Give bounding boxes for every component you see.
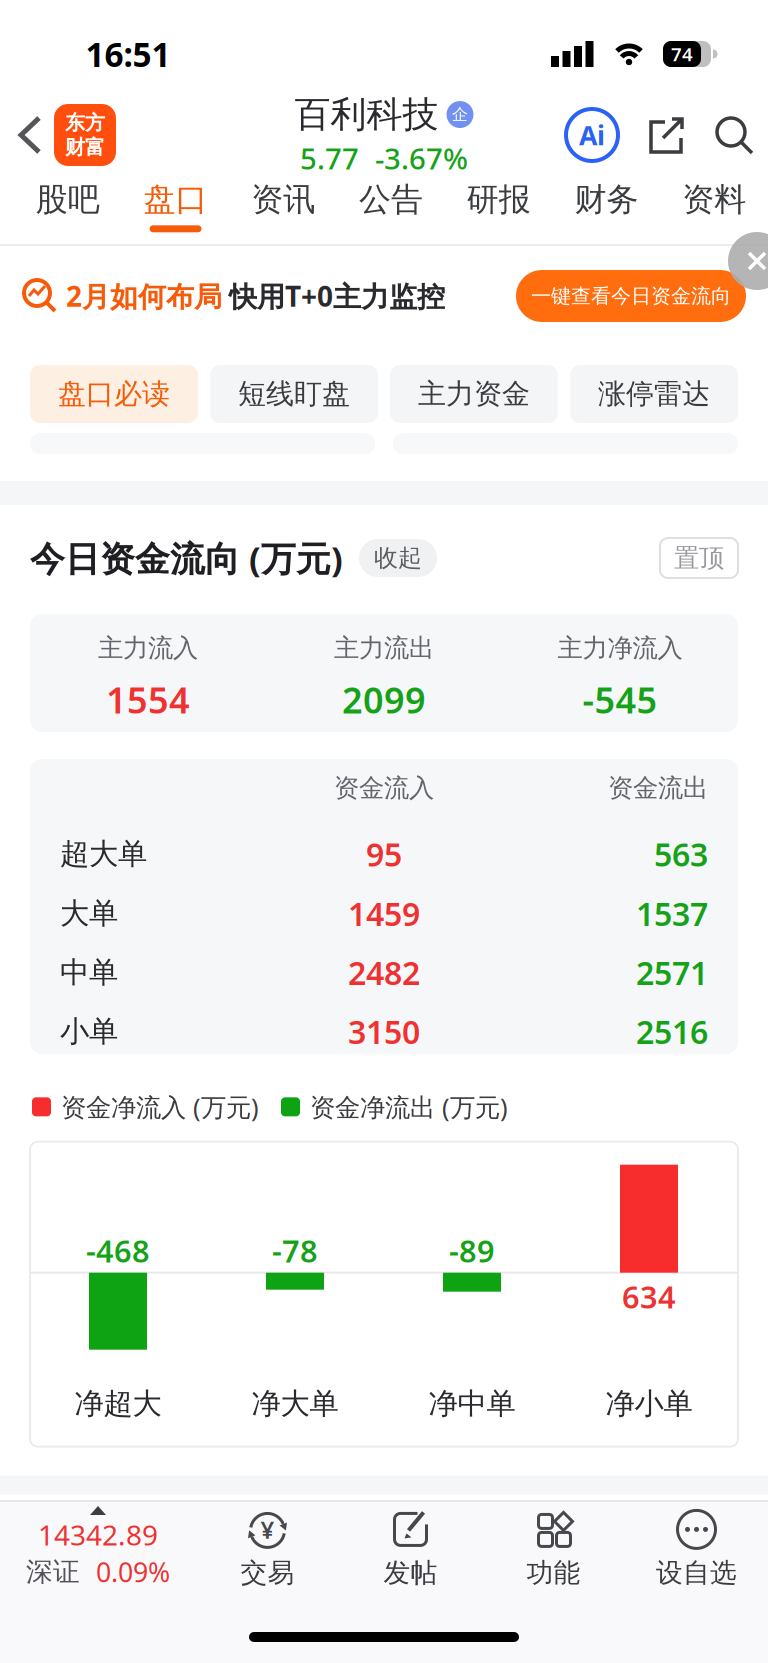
button[interactable]: 短线盯盘: [210, 365, 378, 423]
staticText: 3150: [348, 1010, 420, 1053]
staticText: 主力净流入: [557, 633, 682, 664]
staticText: 主力流入: [98, 633, 198, 664]
button[interactable]: 返回: [17, 114, 43, 156]
staticText: 今日资金流向 (万元): [30, 535, 343, 581]
staticText: 股吧: [36, 180, 100, 219]
staticText: 交易: [240, 1556, 294, 1589]
staticText: 涨停雷达: [598, 377, 710, 411]
staticText: 2月如何布局: [66, 277, 222, 315]
staticText: 快用T+0主力监控: [229, 277, 445, 315]
staticText: 净大单: [251, 1386, 338, 1422]
staticText: 16:51: [85, 32, 170, 76]
button[interactable]: 发帖: [339, 1506, 482, 1589]
staticText: 深证: [26, 1555, 80, 1588]
staticText: 2482: [348, 951, 420, 994]
staticText: 1459: [348, 892, 420, 935]
staticText: 主力流出: [334, 633, 434, 664]
button[interactable]: 股吧: [14, 180, 122, 232]
staticText: 净超大: [74, 1386, 161, 1422]
button[interactable]: Ai 助手: [566, 109, 618, 161]
staticText: 盘口必读: [58, 377, 170, 411]
button[interactable]: 主力资金: [390, 365, 558, 423]
button[interactable]: 14342.89: [0, 1506, 196, 1590]
staticText: 百利科技: [294, 92, 438, 137]
staticText: 发帖: [383, 1556, 437, 1589]
staticText: 95: [366, 833, 402, 875]
staticText: 资讯: [251, 180, 315, 219]
staticText: 主力资金: [418, 377, 530, 411]
staticText: 资金净流入 (万元): [61, 1090, 259, 1124]
staticText: 5.77 -3.67%: [300, 139, 468, 178]
staticText: -78: [272, 1230, 318, 1271]
staticText: -545: [582, 676, 657, 723]
staticText: 大单: [60, 895, 118, 931]
staticText: 1537: [636, 892, 708, 935]
button[interactable]: 东方财富: [54, 104, 116, 166]
staticText: 资金流入: [334, 772, 434, 804]
button[interactable]: 涨停雷达: [570, 365, 738, 423]
button[interactable]: 资料: [660, 180, 768, 232]
staticText: 东方: [65, 110, 105, 135]
button[interactable]: 搜索: [712, 113, 756, 157]
button[interactable]: 功能: [482, 1506, 625, 1589]
staticText: 563: [654, 833, 708, 875]
button[interactable]: 分享: [643, 112, 689, 158]
staticText: 财富: [65, 135, 105, 160]
staticText: 盘口: [144, 180, 208, 219]
staticText: 2516: [636, 1010, 708, 1053]
staticText: 收起: [374, 543, 422, 573]
staticText: 财务: [574, 180, 638, 219]
staticText: 资料: [682, 180, 746, 219]
staticText: 14342.89: [38, 1516, 158, 1553]
staticText: -468: [86, 1230, 150, 1271]
button[interactable]: 资讯: [229, 180, 337, 232]
button[interactable]: 一键查看今日资金流向: [516, 270, 746, 322]
button[interactable]: 财务: [553, 180, 660, 232]
staticText: 2571: [636, 951, 708, 994]
staticText: 净小单: [605, 1386, 692, 1422]
staticText: 74: [671, 42, 693, 66]
button[interactable]: 设自选: [625, 1506, 768, 1589]
button[interactable]: 公告: [337, 180, 445, 232]
staticText: 超大单: [60, 836, 147, 872]
staticText: 小单: [60, 1013, 118, 1049]
staticText: Ai: [579, 117, 605, 153]
staticText: 中单: [60, 954, 118, 990]
button[interactable]: 置顶: [660, 538, 738, 578]
button[interactable]: 盘口必读: [30, 365, 198, 423]
button[interactable]: 关闭: [728, 232, 768, 290]
staticText: 短线盯盘: [238, 377, 350, 411]
staticText: 功能: [526, 1556, 580, 1589]
staticText: 公告: [359, 180, 423, 219]
staticText: 置顶: [674, 542, 724, 574]
button[interactable]: ¥: [196, 1506, 339, 1589]
button[interactable]: 研报: [445, 180, 553, 232]
staticText: 0.09%: [96, 1554, 170, 1590]
button[interactable]: 盘口: [122, 180, 229, 232]
staticText: 1554: [106, 676, 190, 723]
staticText: 2099: [342, 676, 426, 723]
staticText: 设自选: [656, 1556, 737, 1589]
staticText: 资金净流出 (万元): [310, 1090, 508, 1124]
staticText: 一键查看今日资金流向: [531, 284, 731, 308]
staticText: ¥: [260, 1513, 274, 1545]
staticText: 634: [622, 1276, 676, 1317]
staticText: -89: [449, 1230, 495, 1271]
button[interactable]: 收起: [359, 539, 437, 577]
staticText: 净中单: [428, 1386, 515, 1422]
staticText: 企: [452, 105, 468, 124]
staticText: 研报: [467, 180, 531, 219]
staticText: 资金流出: [608, 772, 708, 804]
